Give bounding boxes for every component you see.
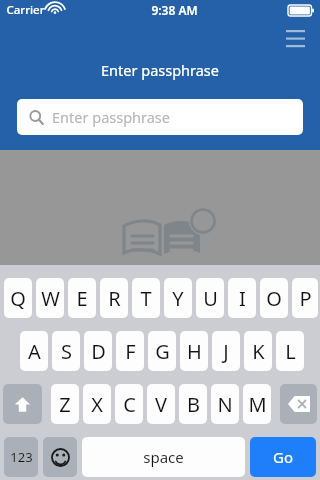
button[interactable]: Go (250, 437, 316, 477)
staticText: K (252, 338, 265, 365)
staticText: G (155, 338, 170, 365)
button[interactable]: 123 (4, 437, 38, 477)
button[interactable]: J (212, 331, 240, 371)
button[interactable]: M (243, 384, 271, 424)
staticText: S (61, 338, 72, 365)
staticText: X (91, 391, 103, 418)
staticText: 123 (10, 448, 33, 466)
button[interactable]: C (115, 384, 143, 424)
button[interactable]: W (36, 278, 64, 318)
button[interactable]: D (84, 331, 112, 371)
staticText: M (248, 391, 267, 418)
button[interactable]: V (147, 384, 175, 424)
staticText: H (187, 338, 202, 365)
staticText: D (91, 338, 106, 365)
button[interactable]: X (83, 384, 111, 424)
staticText: R (108, 285, 121, 312)
button[interactable]: O (260, 278, 288, 318)
staticText: space (143, 447, 184, 467)
staticText: N (217, 391, 233, 418)
button[interactable]: T (132, 278, 160, 318)
button[interactable]: F (116, 331, 144, 371)
staticText: F (125, 338, 136, 365)
button[interactable]: L (276, 331, 304, 371)
staticText: A (28, 338, 41, 365)
staticText: C (123, 391, 136, 418)
staticText: W (41, 285, 60, 312)
button[interactable]: I (228, 278, 256, 318)
button[interactable]: K (244, 331, 272, 371)
staticText: B (187, 391, 200, 418)
button[interactable]: U (196, 278, 224, 318)
staticText: Y (172, 285, 184, 312)
button[interactable]: Emoji (43, 437, 77, 477)
staticText: Carrier (6, 2, 45, 18)
button[interactable]: Enter passphrase (17, 99, 303, 135)
staticText: P (299, 285, 312, 312)
button[interactable]: N (211, 384, 239, 424)
button[interactable]: Y (164, 278, 192, 318)
staticText: V (155, 391, 167, 418)
staticText: 9:38 AM (151, 2, 198, 18)
staticText: Go (273, 447, 293, 467)
staticText: O (266, 285, 282, 312)
staticText: J (223, 338, 229, 365)
button[interactable]: S (52, 331, 80, 371)
button[interactable]: H (180, 331, 208, 371)
staticText: E (76, 285, 88, 312)
button[interactable]: Menu (282, 26, 308, 48)
button[interactable]: Shift (3, 384, 42, 424)
button[interactable]: space (82, 437, 245, 477)
button[interactable]: P (292, 278, 318, 318)
staticText: I (239, 285, 246, 312)
staticText: Enter passphrase (52, 107, 170, 127)
staticText: Z (59, 391, 71, 418)
button[interactable]: Z (51, 384, 79, 424)
staticText: U (203, 285, 218, 312)
button[interactable]: E (68, 278, 96, 318)
staticText: T (140, 285, 152, 312)
button[interactable]: Q (4, 278, 32, 318)
button[interactable]: A (20, 331, 48, 371)
button[interactable]: R (100, 278, 128, 318)
staticText: Enter passphrase (101, 60, 219, 80)
staticText: Q (10, 285, 26, 312)
button[interactable]: G (148, 331, 176, 371)
button[interactable]: B (179, 384, 207, 424)
button[interactable]: Backspace (280, 384, 317, 424)
staticText: L (285, 338, 296, 365)
